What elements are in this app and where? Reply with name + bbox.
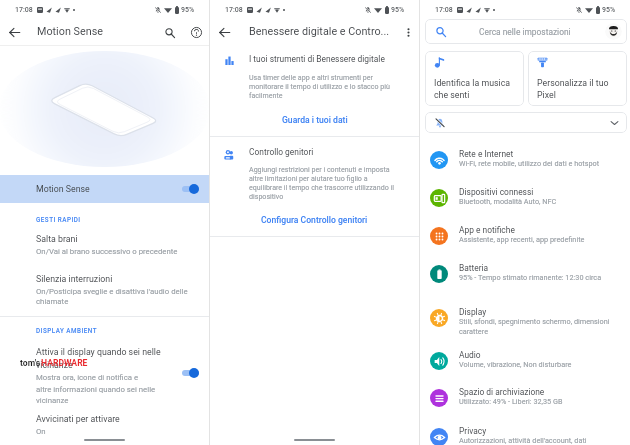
staticText: Autorizzazioni, attività dell'account, d…: [459, 436, 587, 445]
staticText: 95%: [181, 6, 195, 14]
staticText: On/Vai al brano successivo o precedente: [36, 247, 178, 256]
button[interactable]: [210, 48, 419, 136]
staticText: Benessere digitale e Contro...: [249, 25, 390, 38]
staticText: Assistente, app recenti, app predefinite: [459, 235, 585, 244]
staticText: Stili, sfondi, spegnimento schermo, dime…: [459, 317, 610, 335]
staticText: I tuoi strumenti di Benessere digitale: [249, 54, 385, 64]
staticText: Attiva il display quando sei nelle vicin…: [36, 347, 161, 370]
button[interactable]: [420, 301, 630, 335]
staticText: Motion Sense: [36, 184, 90, 194]
staticText: Bluetooth, modalità Auto, NFC: [459, 197, 557, 206]
staticText: Silenzia interruzioni: [36, 274, 113, 284]
staticText: Identifica la musica che senti: [434, 78, 511, 100]
staticText: Cerca nelle impostazioni: [479, 27, 571, 37]
staticText: Wi-Fi, rete mobile, utilizzo dei dati e …: [459, 159, 600, 168]
staticText: Controllo genitori: [249, 147, 314, 157]
button[interactable]: [420, 257, 630, 291]
button[interactable]: [425, 112, 627, 133]
staticText: 17:08: [15, 6, 33, 14]
staticText: GESTI RAPIDI: [36, 216, 81, 223]
staticText: Aggiungi restrizioni per i contenuti e i…: [249, 165, 394, 201]
staticText: App e notifiche: [459, 225, 515, 235]
button[interactable]: [420, 219, 630, 253]
button[interactable]: Help: [188, 24, 205, 41]
staticText: Personalizza il tuo Pixel: [537, 78, 609, 100]
button[interactable]: [0, 234, 209, 260]
staticText: 95%: [391, 6, 405, 14]
button[interactable]: [0, 414, 209, 440]
staticText: Audio: [459, 350, 481, 360]
button[interactable]: Identifica la musica che senti: [425, 51, 524, 106]
staticText: Avvicinati per attivare: [36, 414, 120, 424]
staticText: 17:08: [225, 6, 243, 14]
staticText: On: [36, 427, 46, 436]
staticText: Volume, vibrazione, Non disturbare: [459, 360, 572, 369]
staticText: Privacy: [459, 426, 487, 436]
button[interactable]: Back: [6, 24, 23, 41]
button[interactable]: [0, 345, 209, 407]
staticText: Configura Controllo genitori: [261, 215, 368, 225]
staticText: Salta brani: [36, 234, 78, 244]
button[interactable]: Motion Sense: [0, 175, 209, 203]
staticText: HARDWARE: [41, 358, 88, 368]
button[interactable]: [420, 344, 630, 378]
staticText: Mostra ora, icone di notifica e altre in…: [36, 373, 156, 405]
staticText: 95%: [602, 6, 616, 14]
staticText: Usa timer delle app e altri strumenti pe…: [249, 73, 390, 100]
button[interactable]: [420, 381, 630, 415]
staticText: 95% - Tempo stimato rimanente: 12:30 cir…: [459, 273, 602, 282]
button[interactable]: [210, 146, 419, 240]
button[interactable]: Cerca nelle impostazioni: [425, 19, 627, 44]
button[interactable]: [420, 181, 630, 215]
staticText: DISPLAY AMBIENT: [36, 327, 98, 334]
staticText: Rete e Internet: [459, 149, 514, 159]
button[interactable]: [420, 143, 630, 177]
staticText: Spazio di archiviazione: [459, 387, 545, 397]
button[interactable]: Back: [216, 24, 233, 41]
staticText: On/Posticipa sveglie e disattiva l'audio…: [36, 287, 188, 306]
staticText: Batteria: [459, 263, 489, 273]
staticText: Motion Sense: [37, 25, 103, 38]
button[interactable]: More options: [400, 24, 417, 41]
staticText: Dispositivi connessi: [459, 187, 534, 197]
staticText: Display: [459, 307, 487, 317]
button[interactable]: [0, 274, 209, 311]
staticText: 17:08: [435, 6, 453, 14]
button[interactable]: [420, 420, 630, 445]
staticText: Utilizzato: 49% - Liberi: 32,35 GB: [459, 397, 563, 406]
staticText: tom's: [20, 358, 41, 368]
staticText: Guarda i tuoi dati: [282, 115, 348, 125]
button[interactable]: Personalizza il tuo Pixel: [528, 51, 627, 106]
button[interactable]: Search: [161, 24, 178, 41]
